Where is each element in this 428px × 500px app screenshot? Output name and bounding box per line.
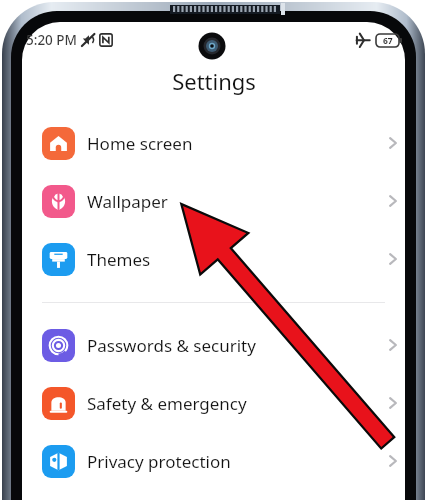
button[interactable]: Wallpaper xyxy=(0,172,428,230)
staticText: Passwords & security xyxy=(87,334,256,357)
button[interactable]: Passwords & security xyxy=(0,316,428,374)
staticText: Settings xyxy=(172,66,256,96)
staticText: Wallpaper xyxy=(87,190,168,213)
button[interactable]: Themes xyxy=(0,230,428,288)
staticText: Home screen xyxy=(87,132,193,155)
staticText: 5:20 PM xyxy=(26,31,77,49)
staticText: Themes xyxy=(87,248,151,271)
button[interactable]: Safety & emergency xyxy=(0,374,428,432)
button[interactable]: Privacy protection xyxy=(0,432,428,490)
button[interactable]: Home screen xyxy=(0,114,428,172)
staticText: Safety & emergency xyxy=(87,392,247,415)
staticText: 67 xyxy=(383,35,393,47)
staticText: Privacy protection xyxy=(87,450,231,473)
